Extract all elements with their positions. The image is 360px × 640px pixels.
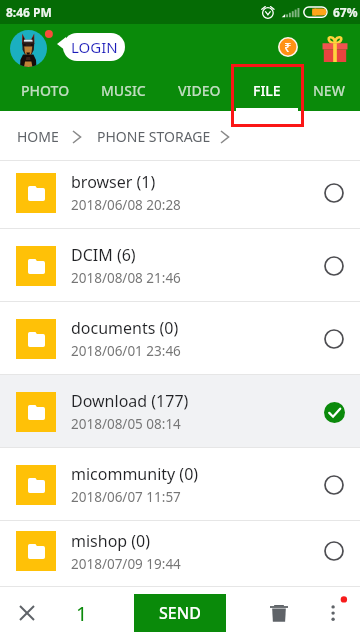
staticText: Download (177) xyxy=(71,390,189,412)
staticText: documents (0) xyxy=(71,317,179,339)
button[interactable]: More options xyxy=(315,595,351,631)
button[interactable]: browser (1) xyxy=(0,161,360,229)
staticText: VIDEO xyxy=(178,81,221,100)
button[interactable]: VIDEO xyxy=(162,77,236,111)
button[interactable]: FILE xyxy=(236,77,298,111)
button[interactable]: LOGIN xyxy=(63,33,125,61)
button[interactable]: MUSIC xyxy=(85,77,162,111)
staticText: NEW xyxy=(313,81,345,100)
button[interactable]: Selected xyxy=(310,388,358,436)
staticText: PHONE STORAGE xyxy=(97,127,211,146)
button[interactable]: Close xyxy=(9,595,45,631)
button[interactable]: SEND xyxy=(134,594,226,632)
button[interactable]: Select xyxy=(310,169,358,217)
staticText: 67% xyxy=(333,4,358,20)
button[interactable]: Rewards xyxy=(278,37,298,57)
button[interactable]: PHONE STORAGE xyxy=(97,127,211,146)
button[interactable]: Select xyxy=(310,461,358,509)
button[interactable]: NEW xyxy=(298,77,360,111)
button[interactable]: HOME xyxy=(17,127,59,146)
button[interactable]: Download (177) xyxy=(0,375,360,448)
staticText: browser (1) xyxy=(71,171,156,193)
staticText: MUSIC xyxy=(101,81,146,100)
staticText: LOGIN xyxy=(71,37,118,57)
staticText: SEND xyxy=(159,602,201,624)
staticText: 2018/07/09 19:44 xyxy=(71,555,181,573)
button[interactable]: Gift xyxy=(322,34,348,62)
button[interactable]: Select xyxy=(310,527,358,575)
staticText: 2018/06/01 23:46 xyxy=(71,342,181,360)
button[interactable]: Profile xyxy=(10,30,47,67)
staticText: 2018/08/08 21:46 xyxy=(71,269,181,287)
staticText: micommunity (0) xyxy=(71,463,199,485)
button[interactable]: micommunity (0) xyxy=(0,448,360,521)
button[interactable]: mishop (0) xyxy=(0,521,360,581)
button[interactable]: Select xyxy=(310,315,358,363)
staticText: mishop (0) xyxy=(71,530,151,552)
staticText: 8:46 PM xyxy=(6,4,52,20)
staticText: 1 xyxy=(76,600,88,627)
staticText: PHOTO xyxy=(21,81,70,100)
staticText: 2018/06/08 20:28 xyxy=(71,196,181,214)
staticText: ₹ xyxy=(284,38,292,56)
button[interactable]: Delete xyxy=(261,595,297,631)
staticText: 2018/06/07 11:57 xyxy=(71,488,181,506)
staticText: HOME xyxy=(17,127,59,146)
button[interactable]: documents (0) xyxy=(0,302,360,375)
button[interactable]: Select xyxy=(310,242,358,290)
staticText: 2018/08/05 08:14 xyxy=(71,415,181,433)
button[interactable]: PHOTO xyxy=(5,77,85,111)
staticText: FILE xyxy=(253,81,281,100)
button[interactable]: DCIM (6) xyxy=(0,229,360,302)
staticText: DCIM (6) xyxy=(71,244,136,266)
